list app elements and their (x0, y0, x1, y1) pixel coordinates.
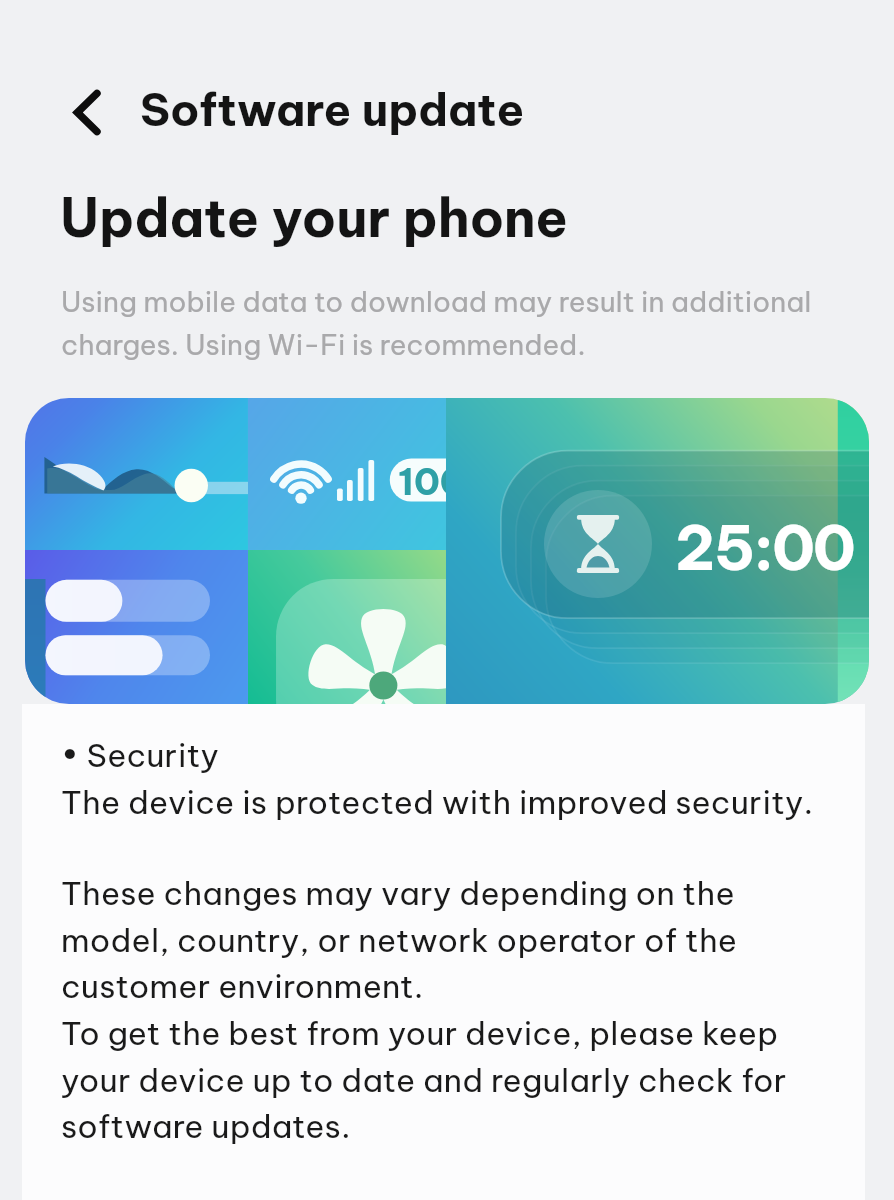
staticText: • Security The device is protected with … (61, 735, 814, 822)
staticText: Software update (140, 81, 525, 138)
staticText: To get the best from your device, please… (61, 1013, 821, 1146)
staticText: 25:00 (675, 509, 854, 586)
staticText: Update your phone (60, 184, 569, 251)
staticText: 100 (398, 458, 446, 505)
button[interactable]: Back (51, 76, 123, 148)
staticText: Using mobile data to download may result… (61, 284, 844, 362)
staticText: These changes may vary depending on the … (61, 873, 821, 1006)
